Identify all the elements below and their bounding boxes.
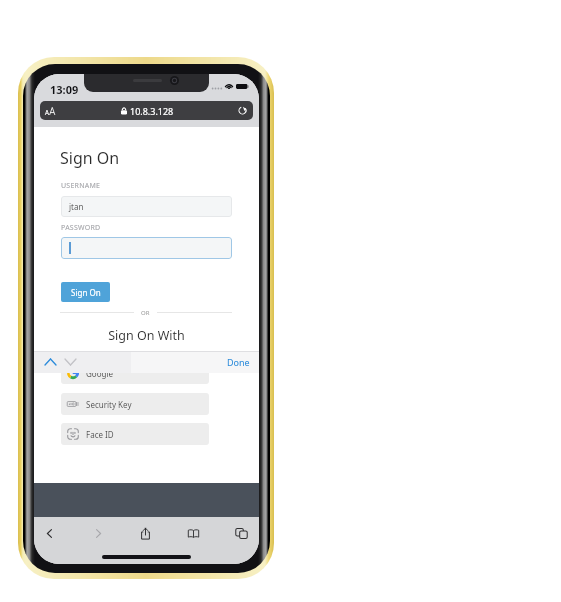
- button[interactable]: Next field: [60, 351, 80, 373]
- button[interactable]: Security Key: [61, 393, 209, 415]
- staticText: Done: [227, 356, 250, 368]
- other: Page settings: [45, 107, 56, 115]
- button[interactable]: Google: [61, 362, 209, 384]
- staticText: Sign On: [60, 147, 120, 169]
- button[interactable]: Tabs: [227, 519, 255, 547]
- staticText: Sign On With: [34, 327, 259, 344]
- button[interactable]: [61, 237, 232, 259]
- button[interactable]: Forward: [84, 519, 112, 547]
- button[interactable]: Face ID: [61, 423, 209, 445]
- staticText: USERNAME: [61, 181, 101, 191]
- staticText: OR: [141, 309, 150, 317]
- staticText: 13:09: [50, 82, 79, 97]
- staticText: Security Key: [86, 399, 132, 410]
- button[interactable]: Page settings: [40, 101, 253, 120]
- staticText: 10.8.3.128: [130, 105, 174, 117]
- button[interactable]: jtan: [61, 196, 232, 217]
- button[interactable]: Sign On: [61, 282, 110, 302]
- staticText: PASSWORD: [61, 223, 101, 233]
- button[interactable]: Previous field: [40, 351, 60, 373]
- staticText: Google: [86, 368, 113, 379]
- button[interactable]: Back: [35, 519, 63, 547]
- button[interactable]: Done: [227, 356, 250, 368]
- staticText: jtan: [69, 201, 84, 212]
- button[interactable]: Share: [131, 519, 159, 547]
- button[interactable]: Bookmarks: [179, 519, 207, 547]
- staticText: Sign On: [71, 287, 101, 298]
- staticText: Face ID: [86, 429, 114, 440]
- other: Reload: [238, 106, 247, 115]
